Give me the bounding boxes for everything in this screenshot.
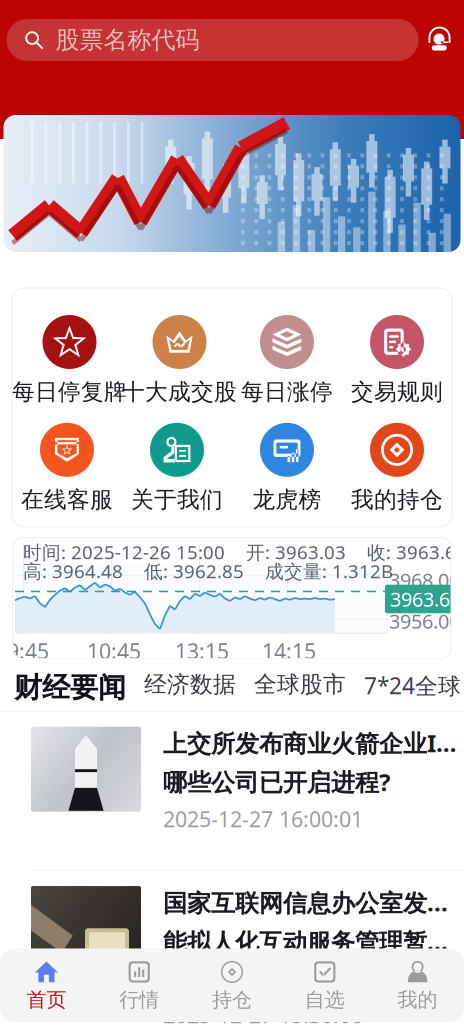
staticText: 自选: [305, 987, 345, 1012]
button[interactable]: 财经要闻: [14, 670, 126, 714]
button[interactable]: 在线客服: [418, 19, 460, 61]
button[interactable]: 每日停复牌: [12, 315, 122, 406]
button[interactable]: 持仓: [186, 960, 278, 1012]
staticText: 财经要闻: [14, 670, 126, 705]
staticText: 持仓: [212, 987, 252, 1012]
staticText: 哪些公司已开启进程?: [163, 766, 390, 798]
staticText: 14:15: [262, 637, 316, 665]
button[interactable]: 关于我们: [122, 423, 232, 514]
button[interactable]: 十大成交股: [122, 315, 232, 406]
staticText: 在线客服: [21, 486, 113, 514]
staticText: 经济数据: [144, 670, 236, 698]
button[interactable]: 7*24全球: [364, 670, 461, 701]
staticText: 9:45: [7, 637, 49, 665]
button[interactable]: 我的: [371, 960, 464, 1012]
button[interactable]: 自选: [278, 960, 371, 1012]
staticText: 龙虎榜: [252, 486, 321, 514]
button[interactable]: 国家互联网信息办公室发布人工智: [0, 871, 464, 1030]
button[interactable]: 首页: [0, 960, 93, 1012]
button[interactable]: 上交所发布商业火箭企业IPO指引: [0, 712, 464, 870]
button[interactable]: 交易规则: [342, 315, 452, 406]
staticText: 全球股市: [254, 670, 346, 698]
button[interactable]: 在线客服: [12, 423, 122, 514]
staticText: 上交所发布商业火箭企业IPO指引: [163, 727, 463, 759]
button[interactable]: 我的持仓: [342, 423, 452, 514]
staticText: 我的持仓: [351, 486, 443, 514]
staticText: 7*24全球: [364, 670, 461, 701]
staticText: 10:45: [87, 637, 141, 665]
staticText: 13:15: [175, 637, 229, 665]
staticText: 十大成交股: [122, 378, 237, 406]
staticText: 开: 3963.03: [246, 540, 346, 564]
staticText: 成交量: 1.312B: [265, 559, 393, 583]
staticText: 每日停复牌: [12, 378, 127, 406]
button[interactable]: 龙虎榜: [232, 423, 342, 514]
staticText: 关于我们: [131, 486, 223, 514]
staticText: 交易规则: [351, 378, 443, 406]
staticText: 每日涨停: [241, 378, 333, 406]
staticText: 3963.68: [390, 586, 461, 612]
button[interactable]: 全球股市: [254, 670, 346, 698]
staticText: 能拟人化互动服务管理暂行办法: [163, 925, 463, 957]
button[interactable]: 行情: [93, 960, 186, 1012]
staticText: 高: 3964.48: [23, 559, 123, 583]
staticText: 股票名称代码: [55, 25, 199, 55]
button[interactable]: 每日涨停: [232, 315, 342, 406]
staticText: 我的: [398, 987, 438, 1012]
staticText: 2025-12-27 16:00:01: [163, 805, 363, 833]
staticText: 3968.00: [389, 567, 460, 593]
staticText: 行情: [119, 987, 159, 1012]
staticText: 时间: 2025-12-26 15:00: [23, 540, 225, 564]
staticText: 国家互联网信息办公室发布人工智: [163, 886, 463, 918]
staticText: 3956.00: [389, 608, 460, 634]
staticText: 低: 3962.85: [144, 559, 244, 583]
staticText: 收: 3963.68: [367, 540, 464, 564]
staticText: （征求意见稿）: [163, 964, 331, 994]
staticText: 2025-12-27 15:30:00: [163, 1001, 363, 1029]
staticText: 首页: [26, 987, 66, 1012]
button[interactable]: 股票名称代码: [6, 19, 418, 61]
button[interactable]: 经济数据: [144, 670, 236, 698]
